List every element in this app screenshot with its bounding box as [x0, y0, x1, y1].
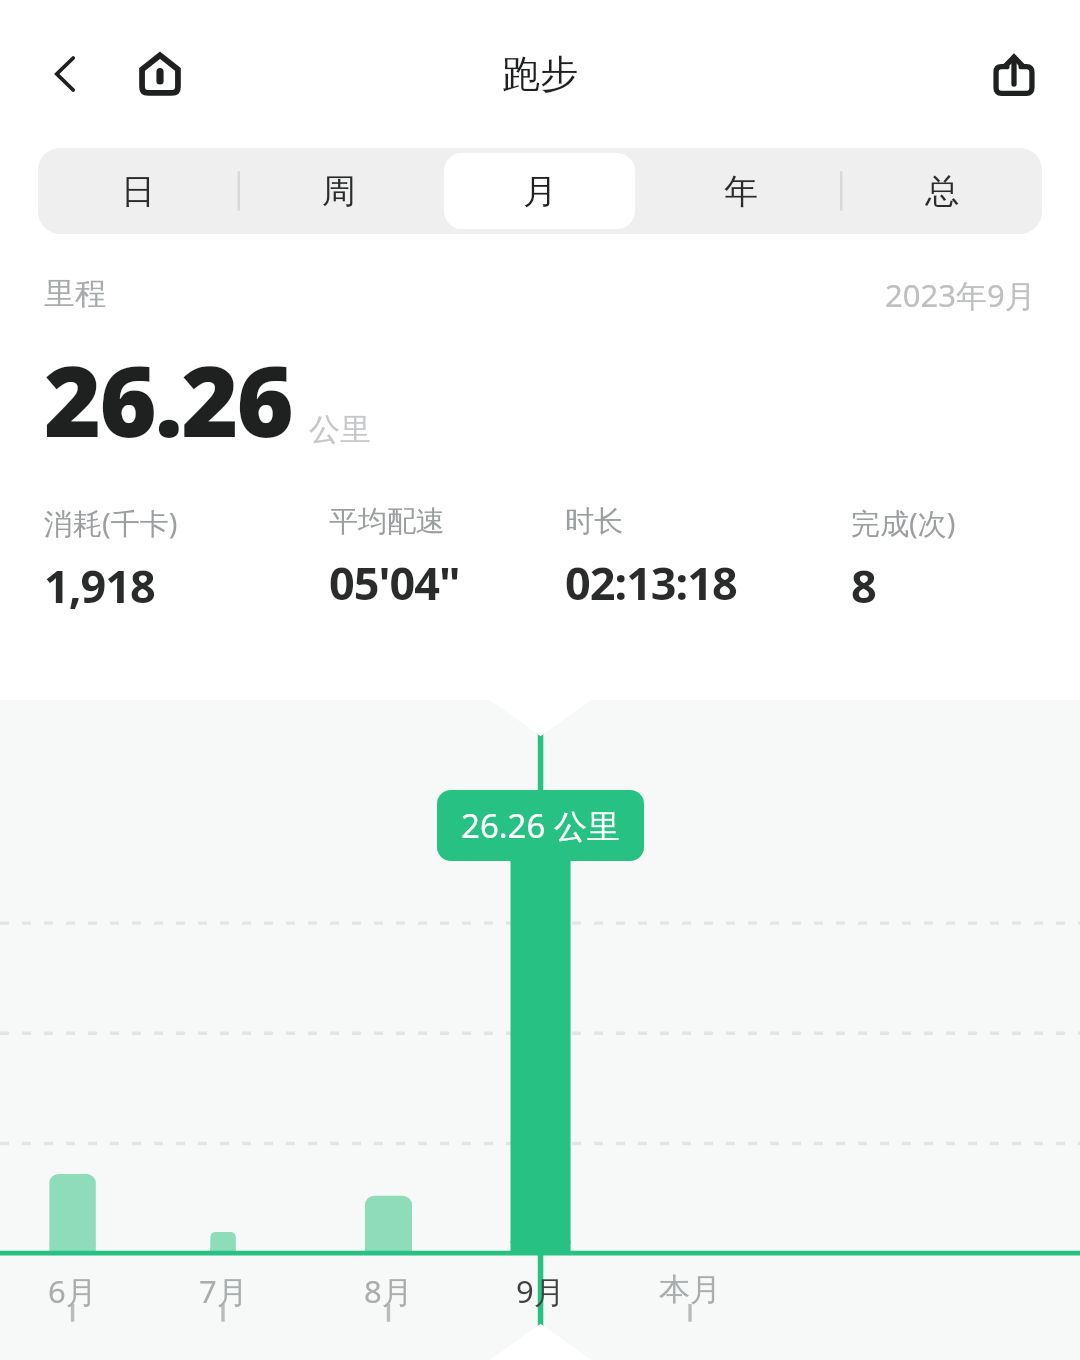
button[interactable]: 年 — [645, 153, 836, 229]
staticText: 总 — [925, 170, 959, 213]
staticText: 6月 — [48, 1270, 97, 1312]
button[interactable]: 月 — [444, 153, 635, 229]
button[interactable]: 总 — [846, 153, 1037, 229]
staticText: 8月 — [364, 1270, 413, 1312]
staticText: 26.26 — [44, 332, 293, 465]
staticText: 2023年9月 — [885, 274, 1036, 316]
staticText: 完成(次) — [851, 503, 956, 543]
button[interactable]: 日 — [43, 153, 233, 229]
staticText: 月 — [523, 170, 557, 213]
staticText: 1,918 — [44, 555, 155, 616]
staticText: 公里 — [309, 410, 371, 449]
staticText: 本月 — [659, 1270, 721, 1309]
staticText: 9月 — [516, 1270, 565, 1312]
staticText: 02:13:18 — [565, 552, 737, 613]
staticText: 里程 — [44, 274, 106, 313]
staticText: 平均配速 — [329, 503, 445, 540]
staticText: 8 — [851, 555, 876, 616]
button[interactable]: Back — [26, 34, 106, 114]
staticText: 05'04" — [329, 552, 460, 613]
button[interactable]: Share — [974, 34, 1054, 114]
staticText: 日 — [121, 170, 155, 213]
staticText: 26.26 公里 — [461, 803, 620, 848]
button[interactable]: 26.26 公里 — [437, 790, 644, 861]
staticText: 消耗(千卡) — [44, 503, 178, 543]
button[interactable]: 周 — [243, 153, 434, 229]
staticText: 周 — [322, 170, 356, 213]
staticText: 跑步 — [502, 50, 578, 98]
staticText: 7月 — [199, 1270, 248, 1312]
button[interactable]: Home — [120, 34, 200, 114]
staticText: 年 — [724, 170, 758, 213]
staticText: 时长 — [565, 503, 623, 540]
